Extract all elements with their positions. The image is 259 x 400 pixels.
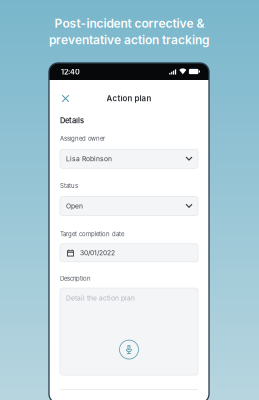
button[interactable]: Open xyxy=(60,197,198,216)
staticText: Target completion date xyxy=(60,231,124,238)
button[interactable]: Dictate xyxy=(119,340,138,359)
staticText: preventative action tracking xyxy=(49,32,210,47)
button[interactable]: Close xyxy=(57,90,73,106)
staticText: Lisa Robinson xyxy=(66,155,112,163)
button[interactable]: 30/01/2022 xyxy=(60,244,198,262)
staticText: Assigned owner xyxy=(60,135,105,142)
staticText: Open xyxy=(66,202,83,210)
staticText: Post-incident corrective & xyxy=(54,16,204,30)
staticText: Details xyxy=(60,116,84,125)
staticText: Status xyxy=(60,182,78,190)
staticText: 30/01/2022 xyxy=(80,249,115,257)
staticText: Action plan xyxy=(106,94,151,103)
staticText: 12:40 xyxy=(61,68,80,76)
staticText: Description xyxy=(60,275,91,282)
button[interactable]: Lisa Robinson xyxy=(60,149,198,168)
staticText: Detail the action plan xyxy=(66,294,135,302)
